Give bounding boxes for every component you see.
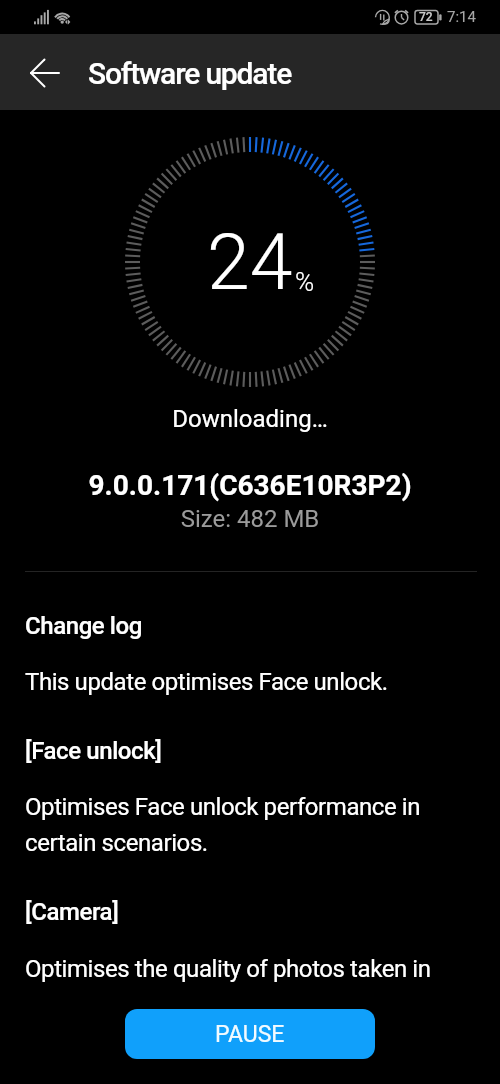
- staticText: Change log: [25, 612, 143, 640]
- staticText: Optimises Face unlock performance in: [25, 793, 421, 821]
- staticText: 24: [207, 218, 293, 308]
- staticText: 72: [419, 10, 433, 24]
- staticText: 7:14: [447, 8, 476, 26]
- button[interactable]: Back: [21, 49, 69, 97]
- staticText: [Camera]: [25, 898, 119, 926]
- staticText: certain scenarios.: [25, 829, 208, 857]
- staticText: Software update: [88, 56, 292, 91]
- staticText: PAUSE: [215, 1021, 285, 1048]
- staticText: 9.0.0.171(C636E10R3P2): [0, 469, 500, 502]
- staticText: This update optimises Face unlock.: [25, 668, 388, 696]
- staticText: %: [295, 267, 315, 297]
- button[interactable]: PAUSE: [125, 1009, 375, 1059]
- staticText: Optimises the quality of photos taken in: [25, 955, 431, 983]
- staticText: Downloading…: [0, 405, 500, 433]
- staticText: [Face unlock]: [25, 737, 162, 765]
- staticText: Size: 482 MB: [0, 505, 500, 533]
